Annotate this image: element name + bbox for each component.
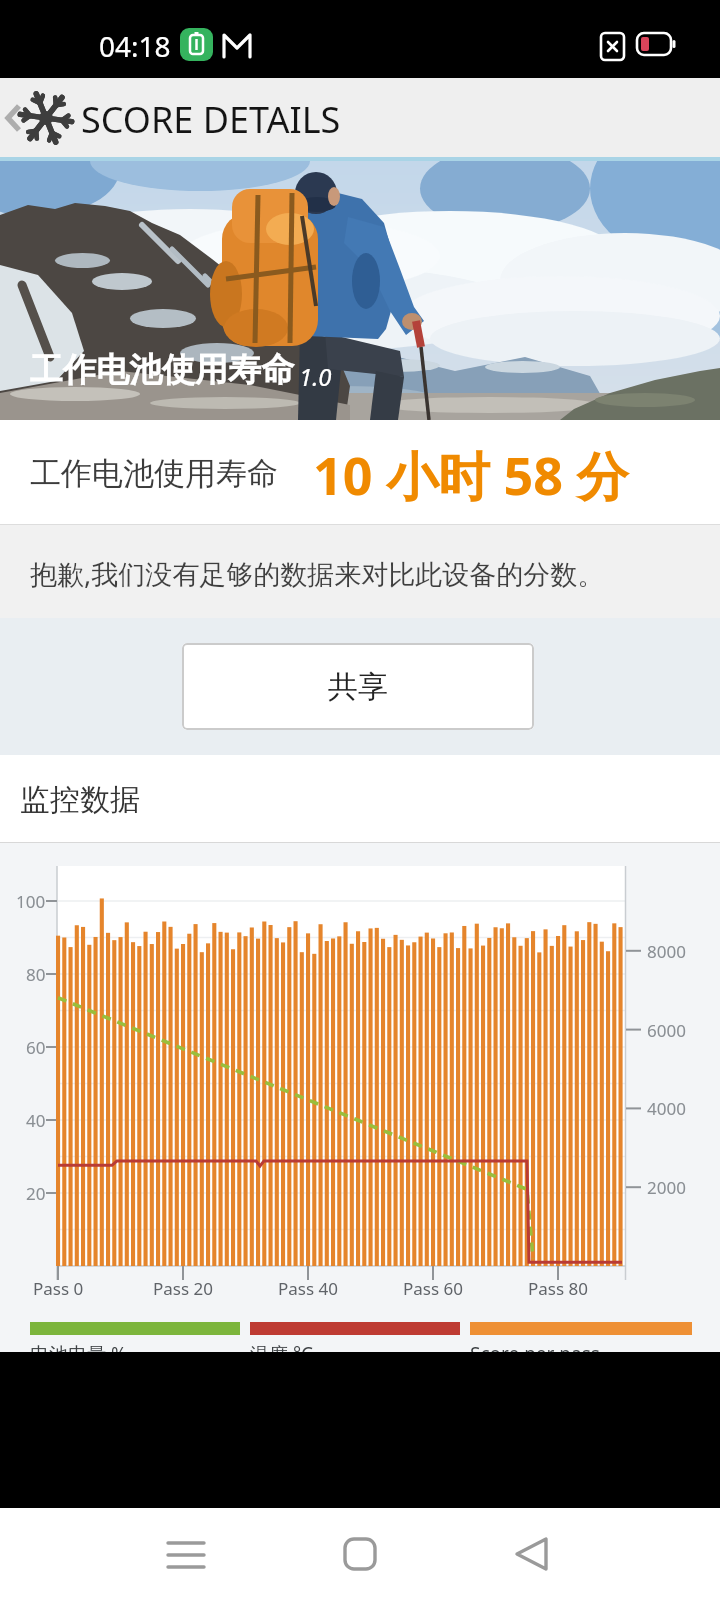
button[interactable] (496, 1519, 568, 1591)
staticText: Pass 0 (33, 1277, 84, 1300)
staticText: 6000 (647, 1019, 686, 1042)
button[interactable]: 共享 (182, 643, 534, 730)
staticText: 温度 °C (250, 1341, 314, 1352)
staticText: 4000 (647, 1097, 686, 1120)
staticText: 电池电量 % (30, 1341, 127, 1352)
staticText: Pass 40 (278, 1277, 338, 1300)
staticText: 1.0 (299, 360, 332, 393)
staticText: 8000 (647, 940, 686, 963)
staticText: Score per pass (470, 1341, 600, 1352)
staticText: 60 (26, 1036, 46, 1059)
staticText: 04:18 (99, 27, 171, 65)
staticText: 20 (26, 1182, 46, 1205)
staticText: Pass 80 (528, 1277, 588, 1300)
staticText: 抱歉,我们没有足够的数据来对比此设备的分数。 (30, 555, 605, 592)
staticText: 共享 (328, 668, 388, 706)
button[interactable] (0, 78, 720, 157)
staticText: 2000 (647, 1176, 686, 1199)
staticText: Pass 60 (403, 1277, 463, 1300)
staticText: 100 (16, 890, 46, 913)
staticText: 80 (26, 963, 46, 986)
staticText: 工作电池使用寿命 (30, 349, 294, 391)
staticText: 监控数据 (20, 781, 140, 819)
staticText: 10 小时 58 分 (313, 439, 629, 510)
staticText: 工作电池使用寿命 (30, 454, 278, 493)
staticText: 40 (26, 1109, 46, 1132)
button[interactable] (150, 1519, 222, 1591)
staticText: SCORE DETAILS (81, 95, 341, 144)
staticText: Pass 20 (153, 1277, 213, 1300)
button[interactable] (324, 1519, 396, 1591)
